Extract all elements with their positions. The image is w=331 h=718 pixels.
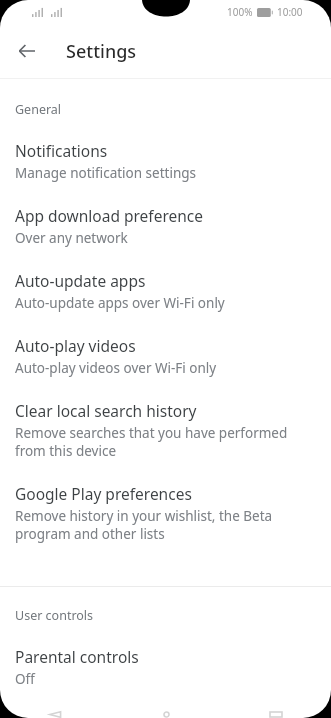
button[interactable]: Back [0, 711, 111, 718]
staticText: Clear local search history [15, 400, 197, 421]
staticText: 100% [227, 5, 253, 19]
staticText: Parental controls [15, 646, 139, 667]
staticText: Remove history in your wishlist, the Bet… [15, 507, 315, 543]
button[interactable]: Auto-play videos [0, 335, 331, 400]
staticText: Settings [66, 39, 137, 64]
staticText: Google Play preferences [15, 483, 192, 504]
staticText: Auto-play videos [15, 335, 136, 356]
button[interactable]: Home [111, 711, 221, 718]
staticText: User controls [15, 607, 94, 624]
staticText: Auto-play videos over Wi-Fi only [15, 359, 217, 377]
staticText: Notifications [15, 140, 108, 161]
button[interactable]: Back [10, 34, 44, 68]
staticText: General [15, 101, 62, 118]
staticText: Auto-update apps [15, 270, 146, 291]
staticText: 10:00 [277, 5, 303, 19]
button[interactable]: Google Play preferences [0, 483, 331, 566]
staticText: Off [15, 670, 35, 688]
button[interactable]: Parental controls [0, 646, 331, 711]
staticText: App download preference [15, 205, 204, 226]
button[interactable]: App download preference [0, 205, 331, 270]
button[interactable]: Notifications [0, 140, 331, 205]
staticText: Auto-update apps over Wi-Fi only [15, 294, 225, 312]
staticText: Remove searches that you have performed … [15, 424, 315, 460]
staticText: Manage notification settings [15, 164, 197, 182]
staticText: Over any network [15, 229, 128, 247]
button[interactable]: Clear local search history [0, 400, 331, 483]
button[interactable]: Auto-update apps [0, 270, 331, 335]
button[interactable]: Recent apps [221, 711, 331, 718]
